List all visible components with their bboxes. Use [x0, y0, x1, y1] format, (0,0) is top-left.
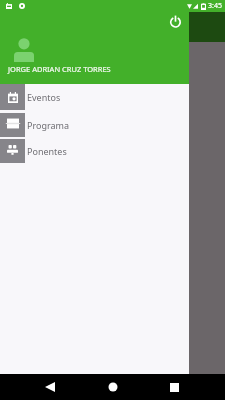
button[interactable]: Recent apps	[164, 377, 184, 397]
staticText: Ponentes	[27, 145, 67, 157]
staticText: Programa	[27, 119, 70, 131]
button[interactable]: Programa	[0, 113, 189, 137]
button[interactable]: Back	[41, 377, 61, 397]
button[interactable]: Home	[103, 377, 123, 397]
button[interactable]: Cerrar sesion	[165, 11, 185, 31]
button[interactable]: Eventos	[0, 84, 189, 110]
staticText: Eventos	[27, 91, 61, 103]
staticText: 3:45	[208, 1, 222, 11]
staticText: JORGE ADRIAN CRUZ TORRES	[8, 64, 111, 74]
button[interactable]: Ponentes	[0, 139, 189, 163]
